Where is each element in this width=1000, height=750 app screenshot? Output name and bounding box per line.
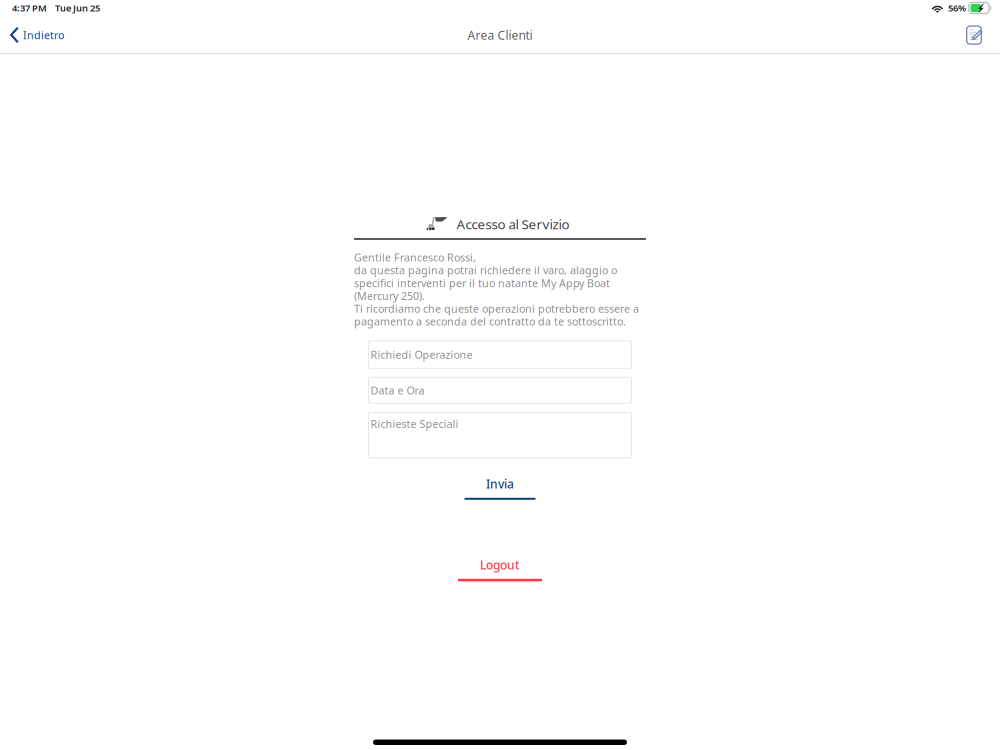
staticText: Accesso al Servizio [456, 215, 569, 233]
staticText: 4:37 PM [12, 2, 47, 14]
button[interactable]: Data e Ora [368, 377, 631, 403]
button[interactable]: Richiedi Operazione [368, 341, 631, 368]
button[interactable]: Logout [446, 559, 554, 581]
staticText: Richiedi Operazione [370, 347, 472, 362]
button[interactable]: Indietro [0, 19, 74, 50]
staticText: Area Clienti [467, 27, 532, 43]
button[interactable]: Invia [452, 478, 547, 500]
staticText: Tue Jun 25 [55, 2, 100, 14]
staticText: Richieste Speciali [370, 417, 458, 431]
staticText: Logout [480, 557, 520, 573]
staticText: (Mercury 250). [354, 289, 425, 303]
staticText: Invia [486, 476, 514, 492]
staticText: Gentile Francesco Rossi, [354, 250, 476, 264]
staticText: Indietro [23, 28, 64, 42]
button[interactable]: Compose [956, 19, 1000, 50]
staticText: 56% [948, 2, 966, 14]
button[interactable]: Richieste Speciali [368, 412, 631, 458]
staticText: specifici interventi per il tuo natante … [354, 276, 610, 290]
staticText: pagamento a seconda del contratto da te … [354, 314, 626, 328]
staticText: Data e Ora [370, 383, 424, 397]
staticText: da questa pagina potrai richiedere il va… [354, 263, 617, 277]
staticText: Ti ricordiamo che queste operazioni potr… [354, 301, 639, 316]
